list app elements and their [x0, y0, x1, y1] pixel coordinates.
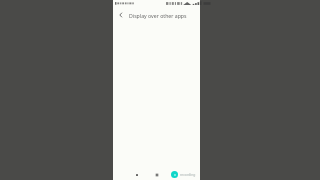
staticText: recording: [180, 172, 196, 177]
button[interactable]: Navigate up: [114, 8, 128, 22]
staticText: Display over other apps: [129, 12, 187, 19]
button[interactable]: Recents: [132, 170, 141, 179]
button[interactable]: Home: [152, 170, 161, 179]
other: Screen recorder: [171, 171, 178, 178]
button[interactable]: Screen recorder: [171, 171, 196, 178]
